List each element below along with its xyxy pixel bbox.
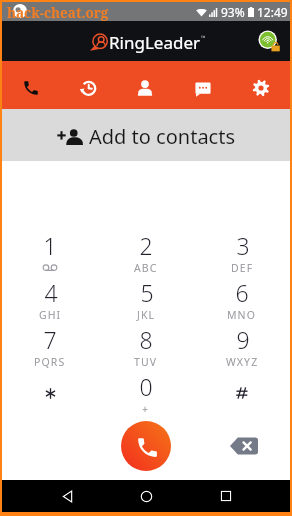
button[interactable]: Add to contacts — [2, 109, 290, 161]
button[interactable]: Home — [131, 481, 161, 511]
staticText: WXYZ — [226, 355, 259, 369]
staticText: ™ — [201, 34, 206, 42]
button[interactable]: Dialer — [2, 61, 59, 109]
staticText: 9 — [236, 324, 250, 355]
button[interactable]: 9 — [194, 324, 290, 371]
staticText: 4 — [44, 277, 58, 308]
staticText: 12:49 — [257, 4, 288, 20]
button[interactable]: Network status — [258, 30, 280, 52]
button[interactable]: 1 — [2, 230, 98, 277]
staticText: ABC — [134, 261, 158, 275]
button[interactable]: Recents — [59, 61, 116, 109]
button[interactable]: 7 — [2, 324, 98, 371]
staticText: 5 — [140, 277, 154, 308]
staticText: 8 — [139, 324, 153, 355]
button[interactable]: Call — [121, 421, 171, 471]
button[interactable]: Backspace — [230, 437, 258, 455]
button[interactable]: Contacts — [116, 61, 174, 109]
button[interactable]: 6 — [194, 277, 290, 324]
button[interactable] — [2, 371, 98, 418]
button[interactable]: 8 — [98, 324, 194, 371]
button[interactable]: Messages — [174, 61, 232, 109]
staticText: 0 — [139, 371, 153, 402]
staticText: 6 — [235, 277, 249, 308]
staticText: Add to contacts — [89, 123, 235, 150]
staticText: 7 — [43, 324, 57, 355]
button[interactable]: Recents — [211, 481, 241, 511]
staticText: GHI — [39, 308, 62, 322]
button[interactable]: 0 — [98, 371, 194, 418]
button[interactable]: 4 — [2, 277, 98, 324]
button[interactable]: Back — [52, 481, 82, 511]
staticText: hack-cheat.org — [7, 4, 109, 22]
staticText: 2 — [139, 230, 153, 261]
staticText: RingLeader — [109, 31, 201, 54]
staticText: DEF — [231, 261, 254, 275]
button[interactable]: 5 — [98, 277, 194, 324]
staticText: PQRS — [34, 355, 66, 369]
staticText: 1 — [43, 230, 57, 261]
button[interactable]: 3 — [194, 230, 290, 277]
staticText: 3 — [236, 230, 250, 261]
button[interactable] — [194, 371, 290, 418]
staticText: MNO — [227, 308, 257, 322]
staticText: 93% — [221, 4, 245, 20]
staticText: + — [142, 402, 150, 416]
staticText: TUV — [134, 355, 158, 369]
button[interactable]: Settings — [232, 61, 290, 109]
button[interactable]: 2 — [98, 230, 194, 277]
staticText: JKL — [137, 308, 156, 322]
